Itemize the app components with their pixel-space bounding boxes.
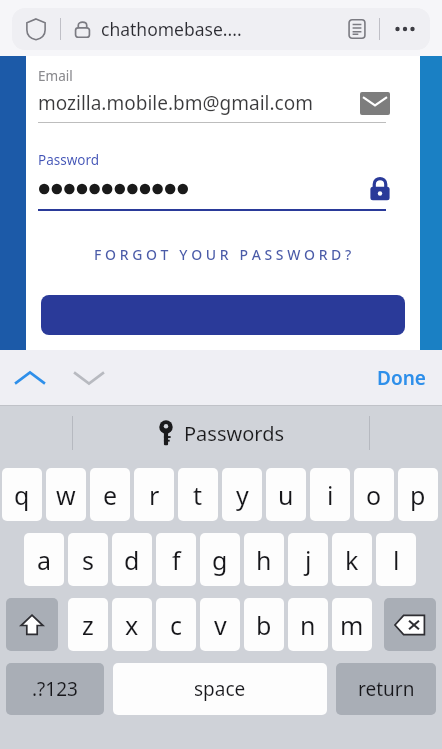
button[interactable]: Next field xyxy=(60,350,118,405)
button[interactable]: i xyxy=(310,468,350,521)
staticText: z xyxy=(82,608,94,642)
button[interactable]: m xyxy=(332,598,372,651)
staticText: f xyxy=(172,543,181,577)
staticText: x xyxy=(125,608,139,642)
button[interactable]: Tracking protection xyxy=(12,8,60,50)
staticText: m xyxy=(340,608,364,642)
staticText: l xyxy=(393,543,400,577)
staticText: Passwords xyxy=(184,420,285,447)
staticText: o xyxy=(366,478,382,512)
button[interactable]: .?123 xyxy=(6,663,104,715)
staticText: F O R G O T Y O U R P A S S W O R D ? xyxy=(94,245,352,264)
button[interactable]: r xyxy=(134,468,174,521)
staticText: space xyxy=(194,676,246,702)
button[interactable]: b xyxy=(244,598,284,651)
staticText: y xyxy=(236,478,249,512)
staticText: .?123 xyxy=(32,676,78,702)
staticText: j xyxy=(305,543,312,577)
staticText: i xyxy=(327,478,334,512)
button[interactable]: q xyxy=(2,468,42,521)
staticText: Email xyxy=(38,67,73,85)
button[interactable]: s xyxy=(68,533,108,586)
button[interactable]: u xyxy=(266,468,306,521)
staticText: n xyxy=(300,608,316,642)
button[interactable]: l xyxy=(376,533,416,586)
button[interactable]: e xyxy=(90,468,130,521)
button[interactable]: w xyxy=(46,468,86,521)
button[interactable]: x xyxy=(112,598,152,651)
button[interactable]: y xyxy=(222,468,262,521)
staticText: v xyxy=(214,608,227,642)
button[interactable]: f xyxy=(156,533,196,586)
staticText: p xyxy=(410,478,426,512)
staticText: u xyxy=(278,478,294,512)
staticText: mozilla.mobile.bm@gmail.com xyxy=(38,90,360,116)
button[interactable] xyxy=(41,295,405,335)
staticText: s xyxy=(82,543,94,577)
staticText: g xyxy=(212,543,228,577)
staticText: k xyxy=(345,543,359,577)
button[interactable]: z xyxy=(68,598,108,651)
button[interactable]: p xyxy=(398,468,438,521)
button[interactable]: Reader view xyxy=(335,8,379,50)
staticText: Done xyxy=(377,365,426,391)
button[interactable]: n xyxy=(288,598,328,651)
staticText: h xyxy=(256,543,272,577)
button[interactable]: Done xyxy=(377,350,426,405)
staticText: Password xyxy=(38,151,100,169)
button[interactable]: return xyxy=(336,663,436,715)
staticText: t xyxy=(193,478,203,512)
staticText: q xyxy=(14,478,30,512)
button[interactable]: Backspace xyxy=(384,598,436,651)
staticText: b xyxy=(256,608,272,642)
button[interactable]: Passwords xyxy=(0,406,442,460)
staticText: c xyxy=(170,608,183,642)
button[interactable]: c xyxy=(156,598,196,651)
button[interactable]: g xyxy=(200,533,240,586)
button[interactable]: v xyxy=(200,598,240,651)
button[interactable]: More options xyxy=(380,8,430,50)
button[interactable]: o xyxy=(354,468,394,521)
button[interactable]: d xyxy=(112,533,152,586)
button[interactable]: h xyxy=(244,533,284,586)
staticText: return xyxy=(358,676,415,702)
button[interactable]: a xyxy=(24,533,64,586)
staticText: d xyxy=(124,543,140,577)
staticText: chathomebase.... xyxy=(101,17,335,41)
staticText: a xyxy=(37,543,52,577)
button[interactable]: space xyxy=(113,663,327,715)
button[interactable]: Previous field xyxy=(0,350,60,405)
button[interactable]: Shift xyxy=(6,598,58,651)
staticText: r xyxy=(149,478,160,512)
staticText: w xyxy=(56,478,76,512)
staticText: e xyxy=(103,478,118,512)
button[interactable]: F O R G O T Y O U R P A S S W O R D ? xyxy=(38,239,408,269)
button[interactable]: k xyxy=(332,533,372,586)
button[interactable]: j xyxy=(288,533,328,586)
button[interactable]: t xyxy=(178,468,218,521)
